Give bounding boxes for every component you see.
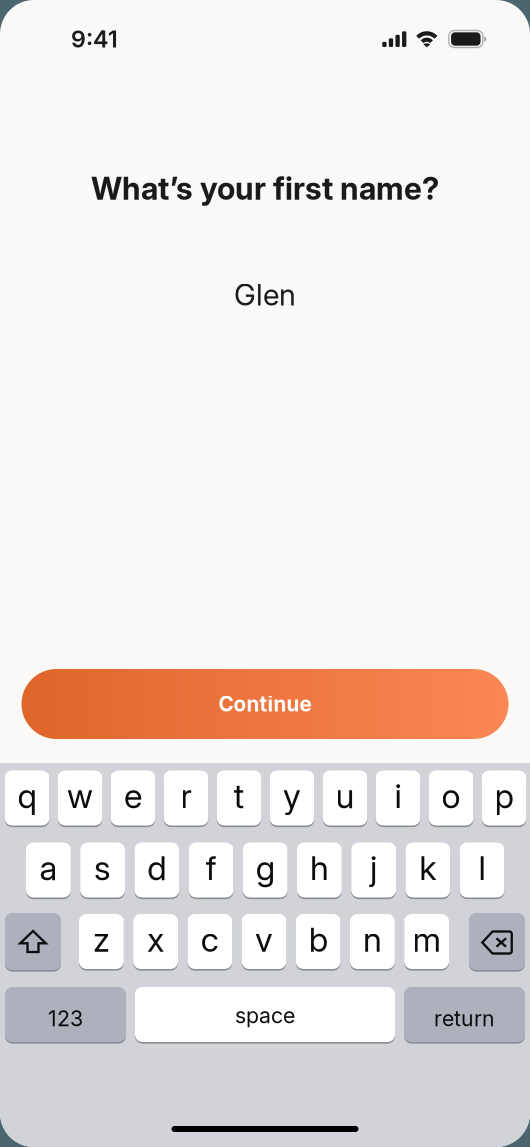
staticText: i bbox=[394, 776, 401, 816]
button[interactable]: e bbox=[111, 770, 155, 825]
staticText: p bbox=[494, 776, 513, 816]
button[interactable]: Shift bbox=[5, 913, 61, 970]
button[interactable]: o bbox=[429, 770, 473, 825]
button[interactable]: Delete bbox=[469, 913, 525, 970]
staticText: q bbox=[17, 776, 36, 816]
button[interactable]: space bbox=[135, 987, 395, 1042]
staticText: m bbox=[413, 919, 441, 960]
button[interactable]: q bbox=[5, 770, 49, 825]
staticText: z bbox=[93, 919, 110, 960]
button[interactable]: k bbox=[405, 842, 450, 897]
button[interactable]: x bbox=[133, 914, 178, 969]
staticText: c bbox=[201, 919, 219, 960]
staticText: space bbox=[235, 1003, 295, 1028]
button[interactable]: h bbox=[297, 842, 342, 897]
staticText: r bbox=[180, 776, 191, 816]
staticText: v bbox=[255, 919, 273, 960]
button[interactable]: i bbox=[376, 770, 420, 825]
staticText: s bbox=[94, 848, 111, 888]
staticText: y bbox=[283, 776, 301, 816]
staticText: Glen bbox=[234, 277, 296, 313]
staticText: b bbox=[309, 919, 328, 960]
button[interactable]: y bbox=[270, 770, 314, 825]
staticText: What’s your first name? bbox=[91, 170, 439, 207]
staticText: k bbox=[419, 848, 436, 888]
staticText: g bbox=[256, 848, 275, 888]
staticText: e bbox=[124, 776, 142, 816]
staticText: Continue bbox=[218, 691, 311, 716]
button[interactable]: n bbox=[350, 914, 395, 969]
button[interactable]: p bbox=[482, 770, 526, 825]
button[interactable]: u bbox=[323, 770, 367, 825]
button[interactable]: return bbox=[404, 987, 525, 1042]
button[interactable]: g bbox=[243, 842, 288, 897]
button[interactable]: z bbox=[79, 914, 124, 969]
button[interactable]: d bbox=[134, 842, 179, 897]
staticText: f bbox=[205, 848, 216, 888]
button[interactable]: 123 bbox=[5, 987, 126, 1042]
staticText: h bbox=[310, 848, 329, 888]
staticText: a bbox=[39, 848, 57, 888]
staticText: return bbox=[434, 1006, 495, 1031]
button[interactable]: b bbox=[296, 914, 341, 969]
button[interactable]: c bbox=[187, 914, 232, 969]
button[interactable]: v bbox=[242, 914, 286, 969]
button[interactable]: l bbox=[460, 842, 504, 897]
staticText: t bbox=[233, 776, 244, 816]
staticText: 123 bbox=[48, 1006, 83, 1031]
staticText: u bbox=[335, 776, 354, 816]
button[interactable]: m bbox=[404, 914, 449, 969]
staticText: o bbox=[441, 776, 460, 816]
staticText: 9:41 bbox=[71, 25, 118, 53]
button[interactable]: a bbox=[26, 842, 71, 897]
staticText: x bbox=[147, 919, 164, 960]
button[interactable]: Home bbox=[0, 1117, 530, 1141]
staticText: w bbox=[67, 776, 93, 816]
button[interactable]: w bbox=[58, 770, 102, 825]
button[interactable]: f bbox=[189, 842, 233, 897]
button[interactable]: s bbox=[80, 842, 125, 897]
staticText: j bbox=[370, 848, 377, 888]
staticText: n bbox=[363, 919, 382, 960]
button[interactable]: j bbox=[351, 842, 396, 897]
staticText: d bbox=[147, 848, 166, 888]
staticText: l bbox=[478, 848, 485, 888]
button[interactable]: Continue bbox=[21, 669, 508, 739]
button[interactable]: t bbox=[217, 770, 261, 825]
button[interactable]: r bbox=[164, 770, 208, 825]
